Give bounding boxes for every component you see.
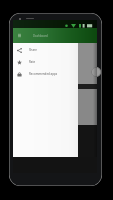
staticText: Share <box>29 48 37 52</box>
staticText: Rate <box>29 60 36 64</box>
staticText: Recommended apps <box>29 72 58 76</box>
button[interactable]: Open navigation drawer <box>15 31 24 40</box>
staticText: Dashboard <box>33 34 48 38</box>
button[interactable]: Recommended apps <box>13 68 78 80</box>
button[interactable]: Rate <box>13 56 78 68</box>
button[interactable]: Share <box>13 44 78 56</box>
